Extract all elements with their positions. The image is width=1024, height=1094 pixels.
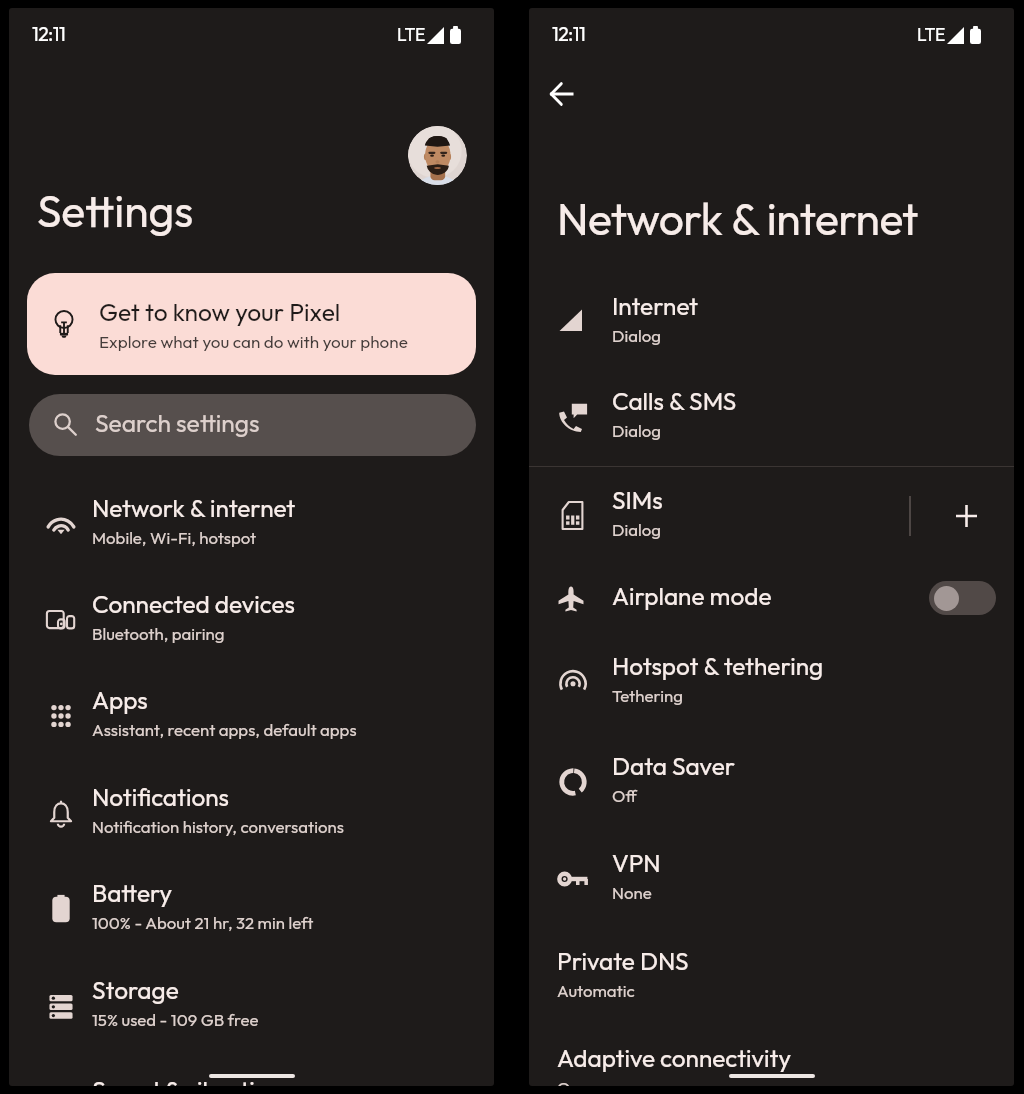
button[interactable]: Airplane mode xyxy=(529,564,1014,660)
staticText: Mobile, Wi-Fi, hotspot xyxy=(92,527,257,548)
button[interactable]: Private DNS xyxy=(529,929,1014,999)
staticText: Calls & SMS xyxy=(612,386,737,417)
staticText: Dialog xyxy=(612,420,661,441)
staticText: Storage xyxy=(92,975,179,1006)
button[interactable]: SIMs xyxy=(529,468,900,564)
staticText: SIMs xyxy=(612,485,663,516)
staticText: VPN xyxy=(612,848,661,879)
button[interactable]: Apps xyxy=(9,668,494,764)
staticText: Data Saver xyxy=(612,751,735,782)
staticText: Get to know your Pixel xyxy=(99,296,341,327)
staticText: Hotspot & tethering xyxy=(612,651,824,682)
staticText: Dialog xyxy=(612,519,661,540)
staticText: Automatic xyxy=(557,980,635,1001)
staticText: Internet xyxy=(612,291,699,322)
button[interactable]: Battery xyxy=(9,861,494,957)
staticText: LTE xyxy=(397,23,425,45)
staticText: Airplane mode xyxy=(612,581,772,612)
staticText: Off xyxy=(612,785,637,806)
button[interactable]: Profile xyxy=(408,126,467,185)
staticText: On xyxy=(557,1077,580,1086)
button[interactable]: Add SIM xyxy=(913,468,1013,564)
button[interactable]: Storage xyxy=(9,958,494,1054)
button[interactable]: Hotspot & tethering xyxy=(529,634,1014,730)
staticText: Private DNS xyxy=(557,946,689,977)
staticText: Dialog xyxy=(612,325,661,346)
staticText: Search settings xyxy=(95,407,260,438)
button[interactable]: Back xyxy=(538,70,586,118)
button[interactable]: Calls & SMS xyxy=(529,369,1014,465)
staticText: Bluetooth, pairing xyxy=(92,623,225,644)
staticText: Apps xyxy=(92,685,148,716)
button[interactable]: Connected devices xyxy=(9,572,494,668)
staticText: 12:11 xyxy=(552,21,586,46)
staticText: Explore what you can do with your phone xyxy=(99,331,408,353)
button[interactable]: Get to know your Pixel xyxy=(27,273,476,375)
staticText: Assistant, recent apps, default apps xyxy=(92,719,357,740)
button[interactable]: VPN xyxy=(529,831,1014,927)
staticText: 15% used - 109 GB free xyxy=(92,1009,259,1030)
button[interactable]: Sound & vibration xyxy=(9,1058,494,1086)
staticText: Notifications xyxy=(92,782,230,813)
button[interactable]: Search settings xyxy=(29,394,476,456)
staticText: LTE xyxy=(917,23,945,45)
button[interactable]: Notifications xyxy=(9,765,494,861)
staticText: Battery xyxy=(92,878,173,909)
button[interactable]: Network & internet xyxy=(9,476,494,572)
button[interactable]: Adaptive connectivity xyxy=(529,1026,1014,1086)
staticText: 12:11 xyxy=(32,21,66,46)
staticText: Network & internet xyxy=(92,493,296,524)
staticText: Connected devices xyxy=(92,589,295,620)
staticText: Settings xyxy=(37,182,194,238)
staticText: 100% - About 21 hr, 32 min left xyxy=(92,912,314,933)
staticText: Tethering xyxy=(612,685,683,706)
staticText: Notification history, conversations xyxy=(92,816,344,837)
staticText: None xyxy=(612,882,652,903)
button[interactable]: Internet xyxy=(529,274,1014,370)
staticText: Adaptive connectivity xyxy=(557,1043,792,1074)
staticText: Network & internet xyxy=(557,190,918,246)
button[interactable]: Data Saver xyxy=(529,734,1014,830)
staticText: Sound & vibration xyxy=(92,1075,282,1086)
